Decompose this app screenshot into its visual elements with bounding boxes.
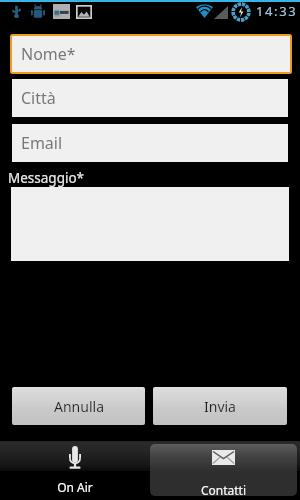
button[interactable]: Annulla	[12, 387, 145, 425]
button[interactable]: Nome*	[12, 36, 290, 72]
staticText: Annulla	[54, 397, 104, 416]
staticText: Nome*	[21, 43, 76, 65]
button[interactable]: Invia	[153, 387, 287, 425]
button[interactable]: Città	[12, 79, 288, 117]
staticText: On Air	[0, 479, 150, 495]
staticText: 14:33	[256, 2, 298, 20]
button[interactable]: Email	[12, 124, 288, 162]
staticText: Email	[21, 132, 63, 154]
button[interactable]: On Air	[0, 441, 150, 500]
button[interactable]: Contatti	[150, 444, 297, 496]
staticText: Invia	[204, 397, 236, 416]
other: On Air	[69, 446, 81, 469]
other: Contatti	[212, 450, 235, 465]
staticText: Contatti	[150, 482, 297, 498]
staticText: Città	[21, 87, 56, 109]
staticText: Messaggio*	[8, 169, 85, 187]
